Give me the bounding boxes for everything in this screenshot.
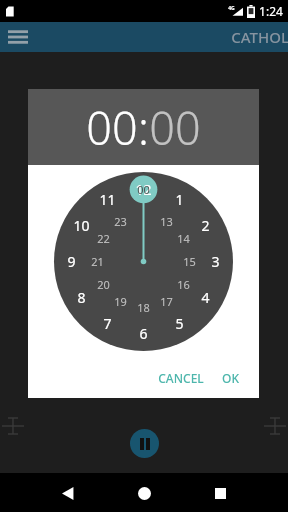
staticText: 7 bbox=[103, 314, 112, 333]
staticText: 21 bbox=[91, 254, 104, 269]
staticText: 3 bbox=[211, 252, 220, 271]
staticText: 13 bbox=[160, 214, 173, 229]
staticText: 20 bbox=[97, 277, 110, 292]
button[interactable]: 00 bbox=[149, 97, 201, 158]
staticText: CANCEL bbox=[158, 370, 204, 386]
button[interactable]: 00 bbox=[86, 97, 138, 158]
staticText: OK bbox=[222, 370, 239, 386]
staticText: 17 bbox=[160, 294, 173, 309]
staticText: 9 bbox=[67, 252, 76, 271]
button[interactable]: Back bbox=[50, 475, 86, 511]
button[interactable] bbox=[54, 172, 233, 351]
staticText: 2 bbox=[201, 216, 210, 235]
button[interactable]: Navigation menu bbox=[5, 24, 31, 50]
staticText: 19 bbox=[114, 294, 127, 309]
staticText: 4 bbox=[201, 288, 210, 307]
staticText: 15 bbox=[183, 254, 196, 269]
button[interactable]: CANCEL bbox=[149, 363, 213, 393]
staticText: : bbox=[138, 97, 149, 158]
staticText: 23 bbox=[114, 214, 127, 229]
staticText: 14 bbox=[177, 231, 190, 246]
staticText: 1 bbox=[175, 190, 184, 209]
staticText: 5 bbox=[175, 314, 184, 333]
button[interactable]: Recent apps bbox=[202, 475, 238, 511]
button[interactable]: Pause bbox=[130, 429, 159, 458]
staticText: 4G bbox=[228, 5, 235, 12]
button[interactable]: OK bbox=[213, 363, 248, 393]
button[interactable]: Home bbox=[126, 475, 162, 511]
staticText: 8 bbox=[77, 288, 86, 307]
staticText: 00 bbox=[137, 182, 150, 197]
staticText: 22 bbox=[97, 231, 110, 246]
staticText: CATHOLIC bbox=[231, 27, 288, 47]
staticText: 6 bbox=[139, 324, 148, 343]
staticText: 1:24 bbox=[259, 3, 283, 19]
staticText: 10 bbox=[73, 216, 90, 235]
staticText: 12 bbox=[135, 180, 152, 199]
staticText: 16 bbox=[177, 277, 190, 292]
staticText: 18 bbox=[137, 300, 150, 315]
staticText: 11 bbox=[99, 190, 116, 209]
